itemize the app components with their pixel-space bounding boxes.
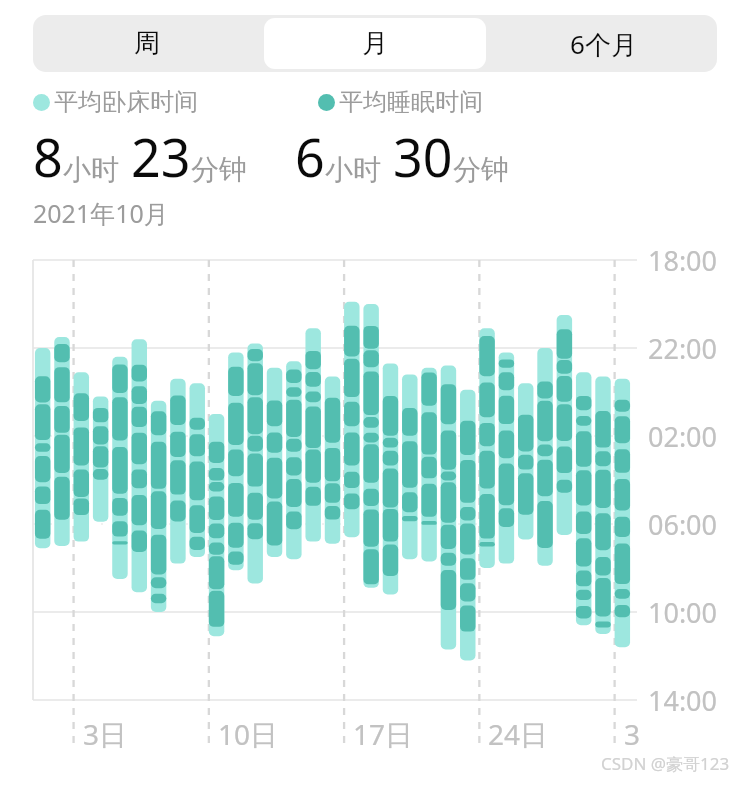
staticText: 10日 bbox=[218, 715, 279, 753]
staticText: 06:00 bbox=[648, 506, 718, 543]
staticText: 30 bbox=[393, 121, 453, 192]
staticText: 月 bbox=[362, 27, 388, 60]
staticText: 分钟 bbox=[453, 152, 509, 187]
staticText: 平均睡眠时间 bbox=[339, 87, 483, 117]
button[interactable]: 6个月 bbox=[492, 18, 714, 69]
staticText: 8 bbox=[33, 121, 63, 192]
staticText: 6 bbox=[295, 121, 325, 192]
staticText: 6个月 bbox=[570, 26, 637, 62]
staticText: 02:00 bbox=[648, 418, 718, 455]
button[interactable]: 周 bbox=[36, 18, 258, 69]
staticText: 分钟 bbox=[191, 152, 247, 187]
staticText: 小时 bbox=[63, 152, 119, 187]
staticText: 17日 bbox=[353, 715, 414, 753]
staticText: 14:00 bbox=[648, 682, 718, 719]
staticText: 平均卧床时间 bbox=[54, 87, 198, 117]
staticText: 小时 bbox=[325, 152, 381, 187]
staticText: 2021年10月 bbox=[33, 196, 169, 230]
staticText: 18:00 bbox=[648, 242, 718, 279]
staticText: 3日 bbox=[83, 715, 128, 753]
staticText: 周 bbox=[134, 27, 160, 60]
staticText: 23 bbox=[131, 121, 191, 192]
staticText: 3 bbox=[624, 715, 641, 753]
staticText: 22:00 bbox=[648, 330, 718, 367]
button[interactable]: 月 bbox=[264, 18, 486, 69]
staticText: 24日 bbox=[488, 715, 549, 753]
staticText: CSDN @豪哥123 bbox=[601, 752, 730, 775]
staticText: 10:00 bbox=[648, 594, 718, 631]
